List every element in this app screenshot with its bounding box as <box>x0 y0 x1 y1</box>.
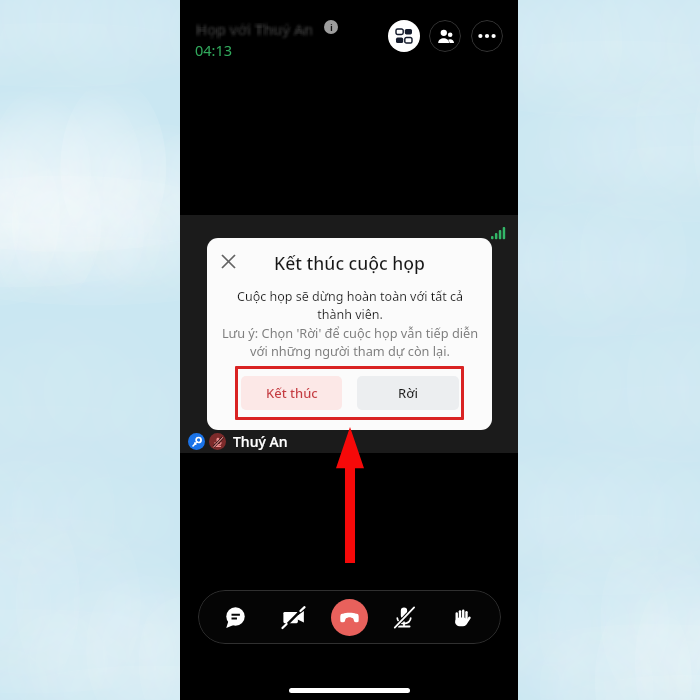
staticText: Họp với Thuý An <box>195 16 313 36</box>
staticText: Họp với Thuý An <box>193 20 311 40</box>
staticText: Họp với Thuý An <box>198 16 316 36</box>
button[interactable]: Raise hand <box>438 594 484 640</box>
staticText: Họp với Thuý An <box>193 22 311 42</box>
staticText: Họp với Thuý An <box>198 18 316 38</box>
staticText: Họp với Thuý An <box>196 21 314 41</box>
button[interactable]: More options <box>471 20 503 52</box>
staticText: Kết thúc cuộc họp <box>274 251 425 275</box>
staticText: Họp với Thuý An <box>199 20 317 40</box>
staticText: Họp với Thuý An <box>197 16 315 36</box>
staticText: Họp với Thuý An <box>194 19 312 39</box>
staticText: Họp với Thuý An <box>194 22 312 42</box>
staticText: Họp với Thuý An <box>194 18 312 38</box>
staticText: Họp với Thuý An <box>198 16 316 36</box>
button[interactable]: Close <box>214 247 242 275</box>
button[interactable]: Participant Thuý An <box>188 432 288 451</box>
staticText: Họp với Thuý An <box>194 20 312 40</box>
staticText: Họp với Thuý An <box>197 20 315 40</box>
staticText: Họp với Thuý An <box>194 18 312 38</box>
staticText: Họp với Thuý An <box>198 20 316 40</box>
staticText: Họp với Thuý An <box>196 22 314 42</box>
staticText: Họp với Thuý An <box>197 17 315 37</box>
button[interactable]: End call <box>331 599 368 636</box>
staticText: Họp với Thuý An <box>194 20 312 40</box>
staticText: Họp với Thuý An <box>199 22 317 42</box>
staticText: Họp với Thuý An <box>198 20 316 40</box>
staticText: Họp với Thuý An <box>196 20 314 40</box>
staticText: Cuộc họp sẽ dừng hoàn toàn với tất cả th… <box>226 288 474 323</box>
staticText: Họp với Thuý An <box>193 21 311 41</box>
staticText: Họp với Thuý An <box>194 17 312 37</box>
staticText: Họp với Thuý An <box>194 17 312 37</box>
staticText: Họp với Thuý An <box>197 19 315 39</box>
staticText: Họp với Thuý An <box>196 17 314 37</box>
staticText: Họp với Thuý An <box>198 17 316 37</box>
staticText: Họp với Thuý An <box>193 17 311 37</box>
staticText: Họp với Thuý An <box>194 21 312 41</box>
staticText: Họp với Thuý An <box>199 16 317 36</box>
staticText: Họp với Thuý An <box>193 16 311 36</box>
staticText: Họp với Thuý An <box>194 17 312 37</box>
staticText: Họp với Thuý An <box>198 21 316 41</box>
button[interactable]: Turn on camera <box>270 594 316 640</box>
staticText: Họp với Thuý An <box>194 22 312 42</box>
staticText: Họp với Thuý An <box>194 17 312 37</box>
staticText: Họp với Thuý An <box>195 19 313 39</box>
staticText: Họp với Thuý An <box>194 19 312 39</box>
staticText: Họp với Thuý An <box>194 21 312 41</box>
staticText: Họp với Thuý An <box>198 17 316 37</box>
button[interactable]: Rời <box>357 376 459 410</box>
staticText: i <box>330 21 333 34</box>
button[interactable]: Unmute microphone <box>381 594 427 640</box>
button[interactable]: Change layout <box>388 20 420 52</box>
staticText: Họp với Thuý An <box>198 17 316 37</box>
staticText: Họp với Thuý An <box>197 21 315 41</box>
staticText: Họp với Thuý An <box>195 21 313 41</box>
staticText: Họp với Thuý An <box>199 17 317 37</box>
staticText: Họp với Thuý An <box>196 16 314 36</box>
staticText: Họp với Thuý An <box>199 21 317 41</box>
staticText: Họp với Thuý An <box>195 18 313 38</box>
staticText: Lưu ý: Chọn 'Rời' để cuộc họp vẫn tiếp d… <box>216 324 484 360</box>
staticText: Họp với Thuý An <box>197 17 315 37</box>
staticText: Họp với Thuý An <box>195 20 313 40</box>
staticText: Họp với Thuý An <box>199 21 317 41</box>
staticText: Họp với Thuý An <box>193 17 311 37</box>
staticText: Họp với Thuý An <box>199 17 317 37</box>
staticText: 04:13 <box>195 40 233 60</box>
staticText: Họp với Thuý An <box>195 22 313 42</box>
staticText: Họp với Thuý An <box>197 22 315 42</box>
staticText: Họp với Thuý An <box>194 21 312 41</box>
staticText: Họp với Thuý An <box>196 18 314 38</box>
staticText: Họp với Thuý An <box>194 21 312 41</box>
staticText: Họp với Thuý An <box>194 16 312 36</box>
staticText: Họp với Thuý An <box>197 18 315 38</box>
staticText: Họp với Thuý An <box>198 18 316 38</box>
staticText: Thuý An <box>233 432 288 451</box>
staticText: Rời <box>398 384 418 402</box>
staticText: Họp với Thuý An <box>198 21 316 41</box>
staticText: Họp với Thuý An <box>198 22 316 42</box>
staticText: Họp với Thuý An <box>193 18 311 38</box>
button[interactable]: Kết thúc <box>241 376 342 410</box>
button[interactable]: Chat <box>212 594 258 640</box>
staticText: Họp với Thuý An <box>196 21 314 41</box>
staticText: Họp với Thuý An <box>198 21 316 41</box>
button[interactable]: Meeting information <box>324 20 338 34</box>
staticText: Họp với Thuý An <box>198 21 316 41</box>
staticText: Họp với Thuý An <box>198 19 316 39</box>
staticText: Họp với Thuý An <box>196 19 314 39</box>
staticText: Họp với Thuý An <box>199 19 317 39</box>
staticText: Họp với Thuý An <box>197 21 315 41</box>
staticText: Họp với Thuý An <box>196 17 314 37</box>
button[interactable]: Participants <box>429 20 461 52</box>
staticText: Kết thúc <box>266 384 318 402</box>
staticText: Họp với Thuý An <box>193 21 311 41</box>
staticText: Họp với Thuý An <box>198 22 316 42</box>
staticText: Họp với Thuý An <box>198 17 316 37</box>
staticText: Họp với Thuý An <box>199 18 317 38</box>
staticText: Họp với Thuý An <box>195 21 313 41</box>
staticText: Họp với Thuý An <box>195 17 313 37</box>
staticText: Họp với Thuý An <box>193 19 311 39</box>
staticText: Họp với Thuý An <box>198 19 316 39</box>
